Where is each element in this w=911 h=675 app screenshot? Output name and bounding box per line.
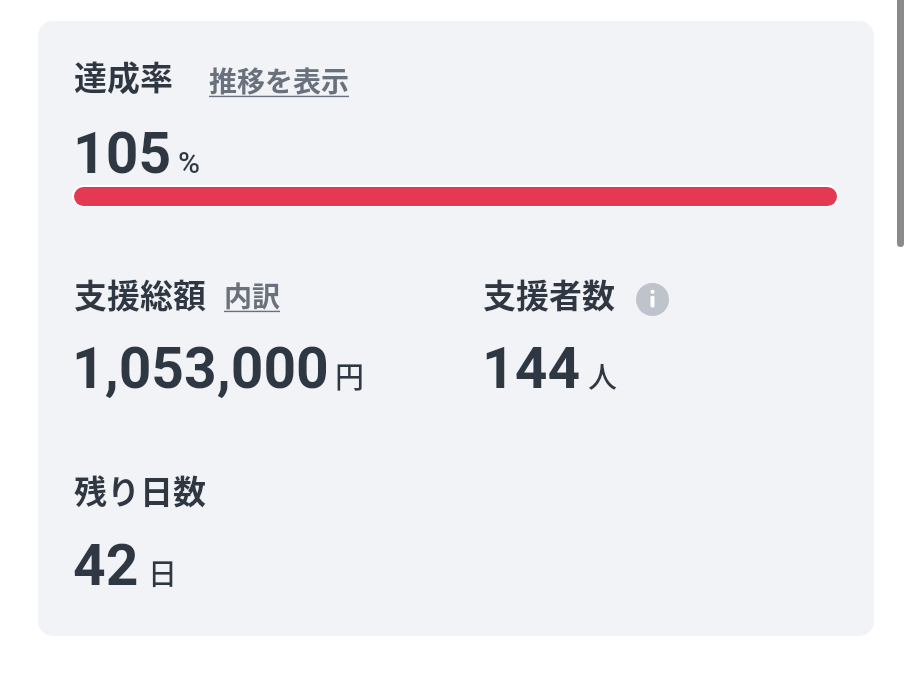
staticText: 円: [335, 354, 365, 396]
staticText: 105: [73, 120, 172, 187]
button[interactable]: 内訳: [224, 275, 281, 316]
staticText: %: [178, 145, 201, 180]
button[interactable]: 支援者数の説明: [636, 283, 669, 316]
staticText: 支援総額: [74, 270, 206, 318]
staticText: 残り日数: [74, 466, 206, 514]
staticText: 人: [588, 354, 618, 396]
staticText: 支援者数: [483, 270, 615, 318]
staticText: 1,053,000: [72, 335, 329, 402]
staticText: 達成率: [74, 52, 173, 100]
button[interactable]: 推移を表示: [209, 60, 350, 101]
staticText: 144: [482, 335, 581, 402]
staticText: 日: [148, 551, 178, 593]
staticText: 42: [73, 532, 139, 599]
